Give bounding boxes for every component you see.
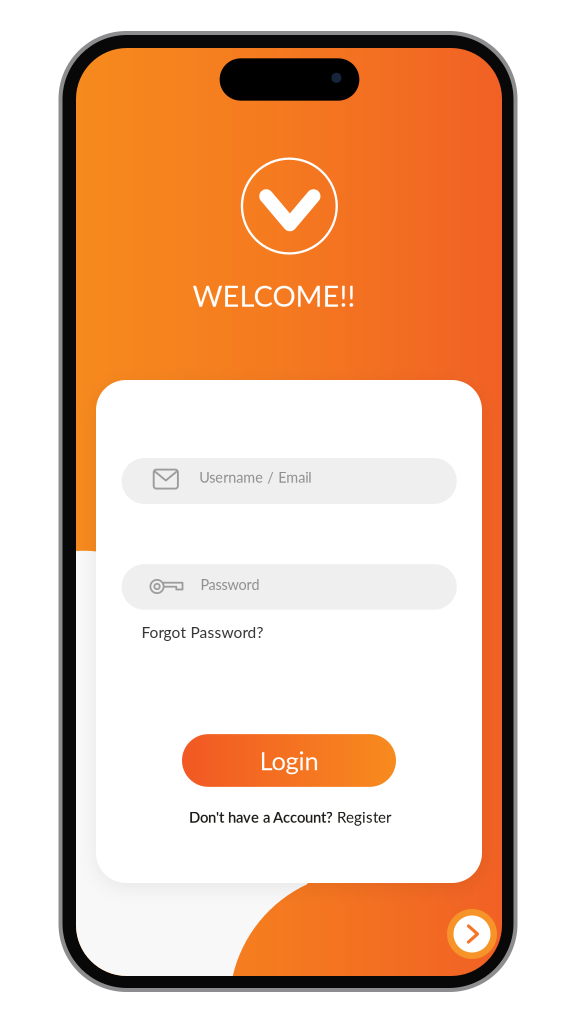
button[interactable]: Login	[182, 734, 396, 787]
staticText: Don't have a Account? Register	[189, 808, 391, 826]
button[interactable]: Username / Email	[122, 458, 457, 504]
staticText: Login	[259, 745, 318, 776]
button[interactable]: Password	[122, 564, 457, 610]
staticText: Password	[200, 576, 259, 593]
button[interactable]: Don't have a Account? Register	[189, 804, 429, 830]
staticText: Username / Email	[199, 469, 311, 486]
staticText: WELCOME!!	[193, 278, 356, 313]
staticText: Forgot Password?	[141, 623, 263, 641]
button[interactable]: Continue	[447, 909, 497, 959]
button[interactable]: Forgot Password?	[141, 619, 271, 645]
